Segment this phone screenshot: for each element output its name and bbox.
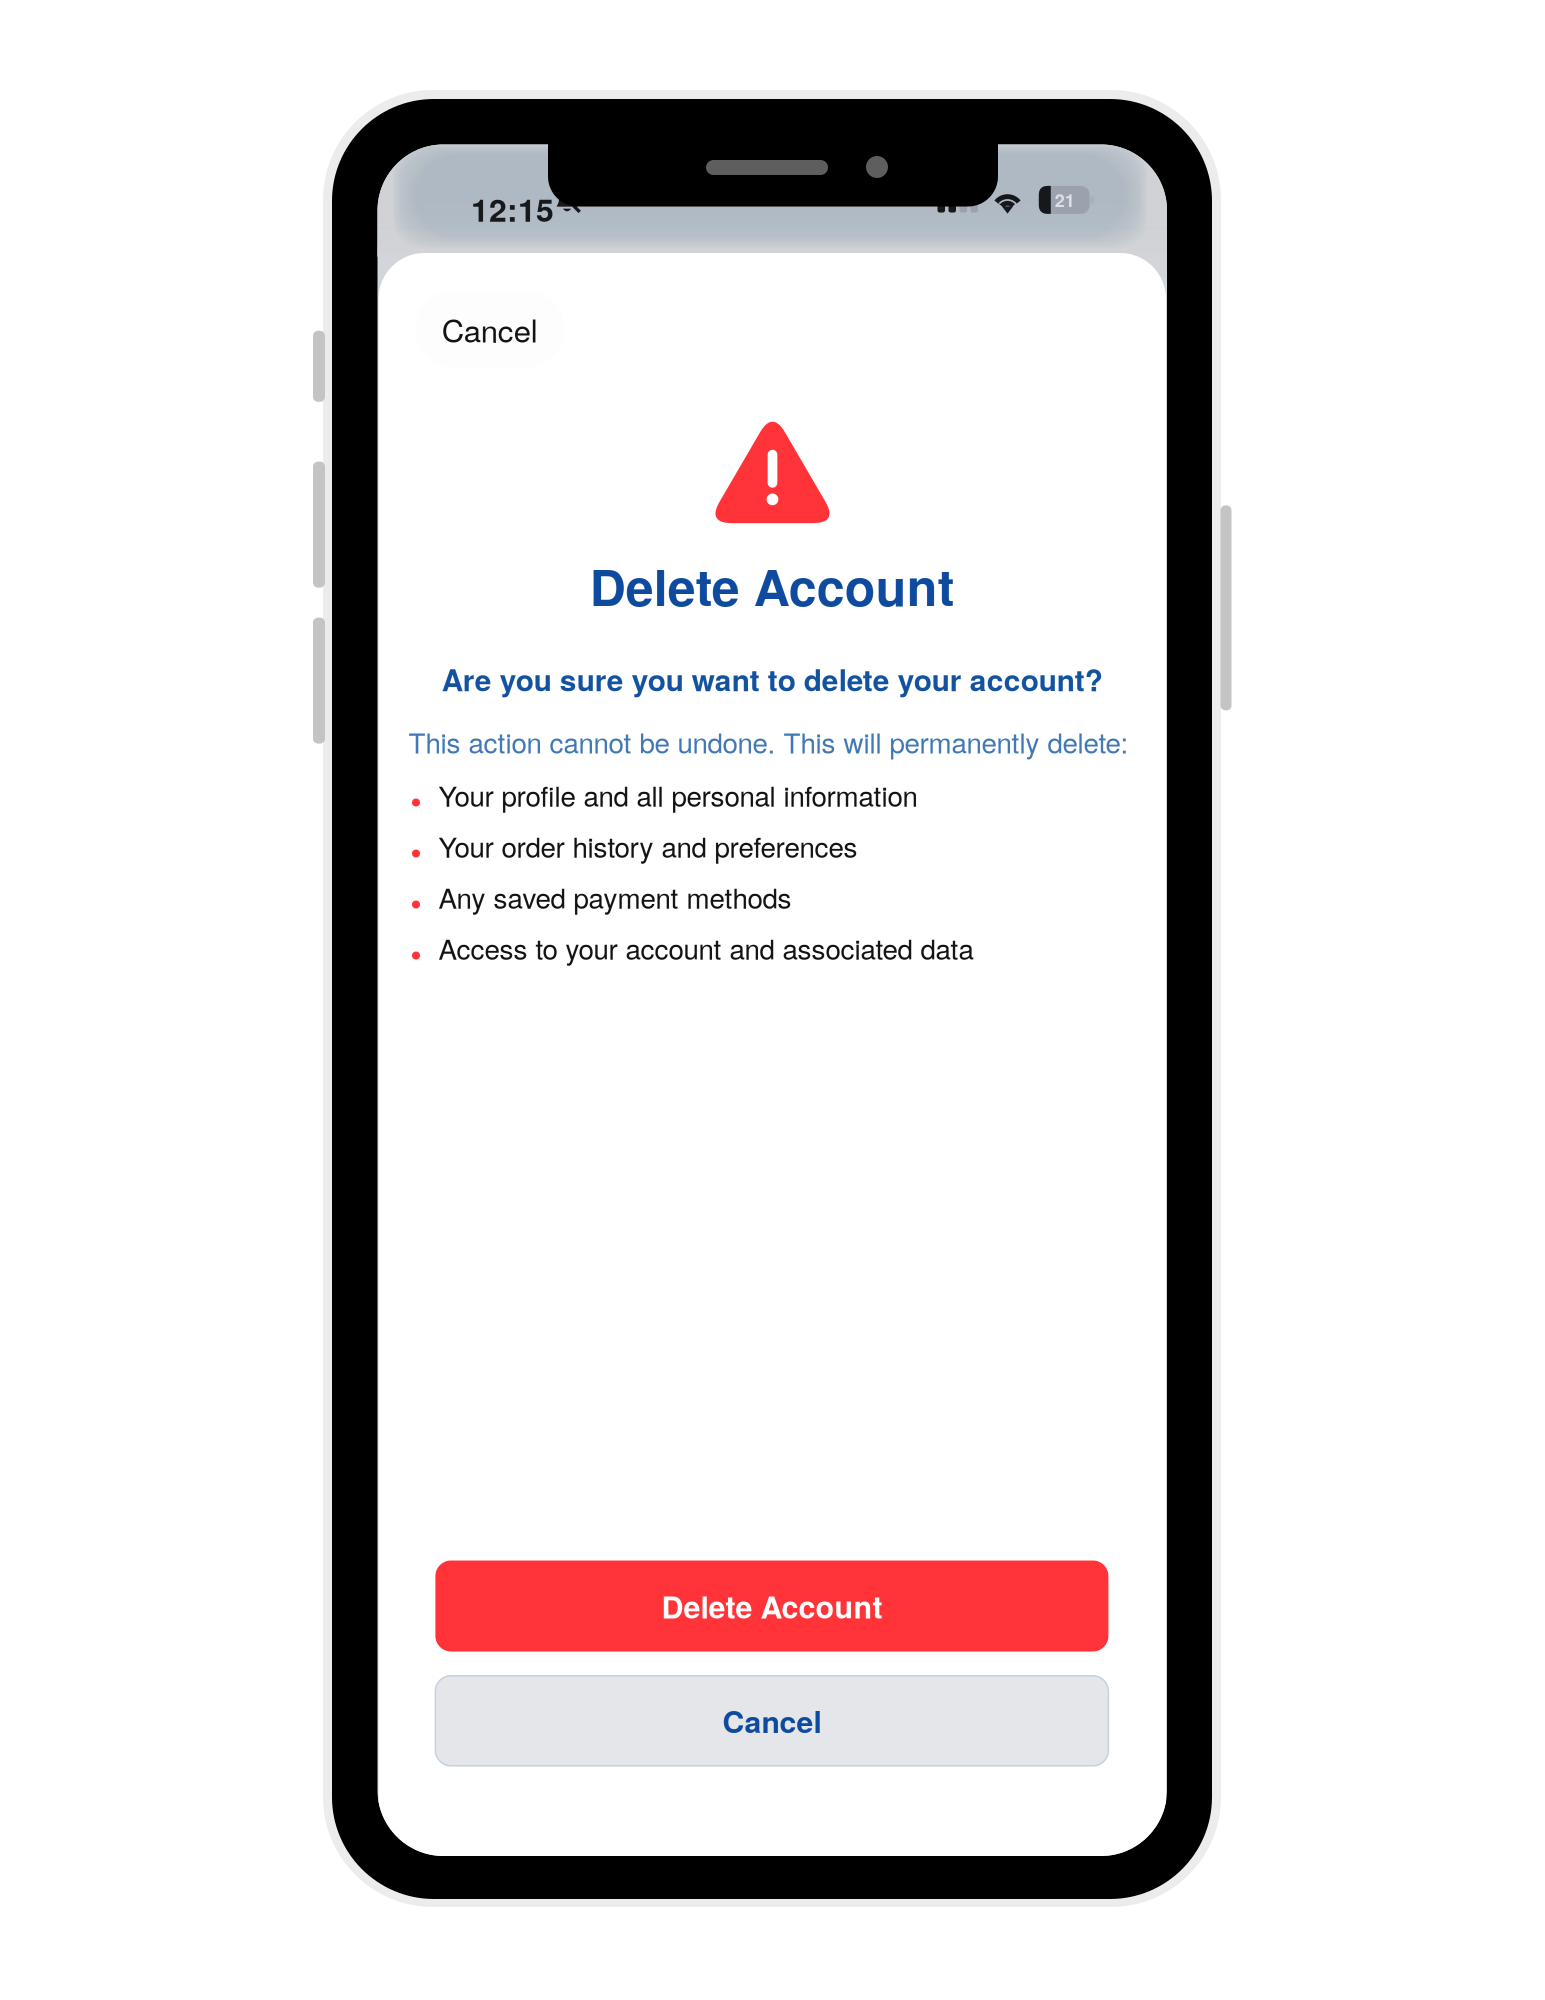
staticText: Your profile and all personal informatio…	[438, 775, 917, 815]
staticText: Your order history and preferences	[438, 826, 857, 866]
staticText: 12:15	[471, 186, 554, 232]
staticText: Cancel	[722, 1699, 821, 1742]
button[interactable]: Cancel	[435, 1676, 1108, 1766]
staticText: Delete Account	[661, 1584, 882, 1628]
staticText: 21	[1055, 187, 1075, 213]
staticText: Delete Account	[590, 550, 955, 621]
staticText: Any saved payment methods	[438, 877, 791, 917]
button[interactable]: Cancel	[415, 290, 565, 367]
staticText: This action cannot be undone. This will …	[408, 722, 1128, 761]
button[interactable]: Delete Account	[435, 1560, 1108, 1651]
staticText: Cancel	[442, 307, 538, 351]
staticText: Are you sure you want to delete your acc…	[442, 658, 1103, 700]
staticText: Access to your account and associated da…	[438, 928, 973, 968]
